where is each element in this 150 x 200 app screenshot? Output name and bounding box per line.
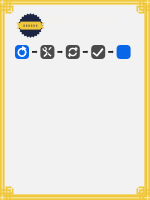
button[interactable]: Restart stage [15,45,29,59]
button[interactable]: Approve stage [91,45,105,59]
button[interactable]: Build stage [40,45,54,59]
button[interactable]: Sync stage [66,45,80,59]
button[interactable]: Deploy stage [117,45,131,59]
